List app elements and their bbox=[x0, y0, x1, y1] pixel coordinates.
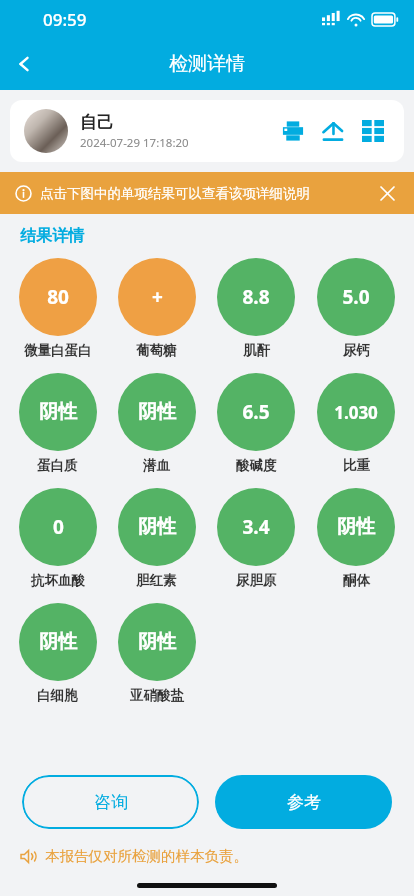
staticText: 阴性 bbox=[39, 630, 77, 654]
staticText: 2024-07-29 17:18:20 bbox=[80, 135, 189, 151]
staticText: 3.4 bbox=[242, 514, 270, 540]
button[interactable]: Table view bbox=[356, 114, 390, 148]
staticText: 自己 bbox=[80, 112, 114, 133]
staticText: 肌酐 bbox=[243, 342, 270, 359]
staticText: 阴性 bbox=[39, 400, 77, 424]
staticText: 胆红素 bbox=[136, 572, 177, 589]
staticText: 微量白蛋白 bbox=[24, 342, 92, 359]
button[interactable]: 阴性 bbox=[8, 601, 107, 706]
staticText: 潜血 bbox=[143, 457, 170, 474]
staticText: 蛋白质 bbox=[37, 457, 78, 474]
button[interactable]: Close bbox=[374, 180, 400, 206]
staticText: 尿钙 bbox=[343, 342, 370, 359]
staticText: 参考 bbox=[287, 792, 321, 813]
staticText: 亚硝酸盐 bbox=[130, 687, 184, 704]
button[interactable]: Share bbox=[316, 114, 350, 148]
button[interactable]: 自己 bbox=[10, 100, 404, 162]
staticText: 葡萄糖 bbox=[136, 342, 177, 359]
staticText: 酸碱度 bbox=[236, 457, 277, 474]
staticText: 点击下图中的单项结果可以查看该项详细说明 bbox=[40, 185, 310, 202]
staticText: 酮体 bbox=[343, 572, 370, 589]
button[interactable]: 阴性 bbox=[8, 371, 107, 476]
staticText: 09:59 bbox=[43, 8, 87, 31]
staticText: 阴性 bbox=[337, 515, 375, 539]
button[interactable]: 阴性 bbox=[107, 601, 206, 706]
button[interactable]: 阴性 bbox=[107, 371, 206, 476]
staticText: 白细胞 bbox=[37, 687, 78, 704]
staticText: 6.5 bbox=[242, 399, 270, 425]
button[interactable]: 3.4 bbox=[206, 486, 306, 591]
staticText: 尿胆原 bbox=[236, 572, 277, 589]
button[interactable]: 阴性 bbox=[107, 486, 206, 591]
button[interactable]: Back bbox=[0, 40, 48, 88]
staticText: 抗坏血酸 bbox=[31, 572, 85, 589]
button[interactable]: 阴性 bbox=[306, 486, 406, 591]
staticText: 检测详情 bbox=[169, 52, 245, 76]
button[interactable]: Print bbox=[276, 114, 310, 148]
staticText: 本报告仅对所检测的样本负责。 bbox=[45, 847, 248, 865]
staticText: 咨询 bbox=[94, 792, 128, 813]
staticText: + bbox=[152, 284, 163, 310]
staticText: 阴性 bbox=[138, 400, 176, 424]
staticText: 1.030 bbox=[334, 401, 378, 424]
staticText: 阴性 bbox=[138, 630, 176, 654]
staticText: 8.8 bbox=[242, 284, 270, 310]
button[interactable]: 80 bbox=[8, 256, 107, 361]
staticText: 5.0 bbox=[342, 284, 370, 310]
button[interactable]: 5.0 bbox=[306, 256, 406, 361]
button[interactable]: 8.8 bbox=[206, 256, 306, 361]
staticText: 0 bbox=[53, 514, 64, 540]
button[interactable]: 咨询 bbox=[22, 775, 199, 829]
button[interactable]: 参考 bbox=[215, 775, 392, 829]
button[interactable]: 6.5 bbox=[206, 371, 306, 476]
staticText: 比重 bbox=[343, 457, 370, 474]
button[interactable]: 0 bbox=[8, 486, 107, 591]
staticText: 阴性 bbox=[138, 515, 176, 539]
button[interactable]: 1.030 bbox=[306, 371, 406, 476]
staticText: 结果详情 bbox=[20, 226, 84, 246]
button[interactable]: + bbox=[107, 256, 206, 361]
staticText: 80 bbox=[47, 284, 69, 310]
